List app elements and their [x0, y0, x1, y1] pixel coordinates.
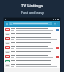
button[interactable]	[4, 41, 60, 45]
button[interactable]: Record	[4, 54, 60, 59]
button[interactable]: Open navigation menu	[5, 22, 8, 25]
button[interactable]	[4, 59, 60, 63]
button[interactable]: Record	[56, 47, 59, 49]
button[interactable]	[4, 63, 60, 68]
button[interactable]: Record	[4, 27, 60, 32]
button[interactable]	[4, 32, 60, 36]
button[interactable]: More options	[56, 22, 59, 25]
button[interactable]: Record	[4, 45, 60, 50]
button[interactable]: Record	[56, 29, 59, 31]
staticText: Fast and easy	[21, 10, 44, 15]
button[interactable]: Record	[56, 56, 59, 58]
button[interactable]	[9, 22, 52, 25]
button[interactable]: Filter	[53, 22, 56, 25]
staticText: TV Listings	[21, 3, 43, 9]
button[interactable]	[4, 50, 60, 54]
button[interactable]	[4, 36, 60, 41]
